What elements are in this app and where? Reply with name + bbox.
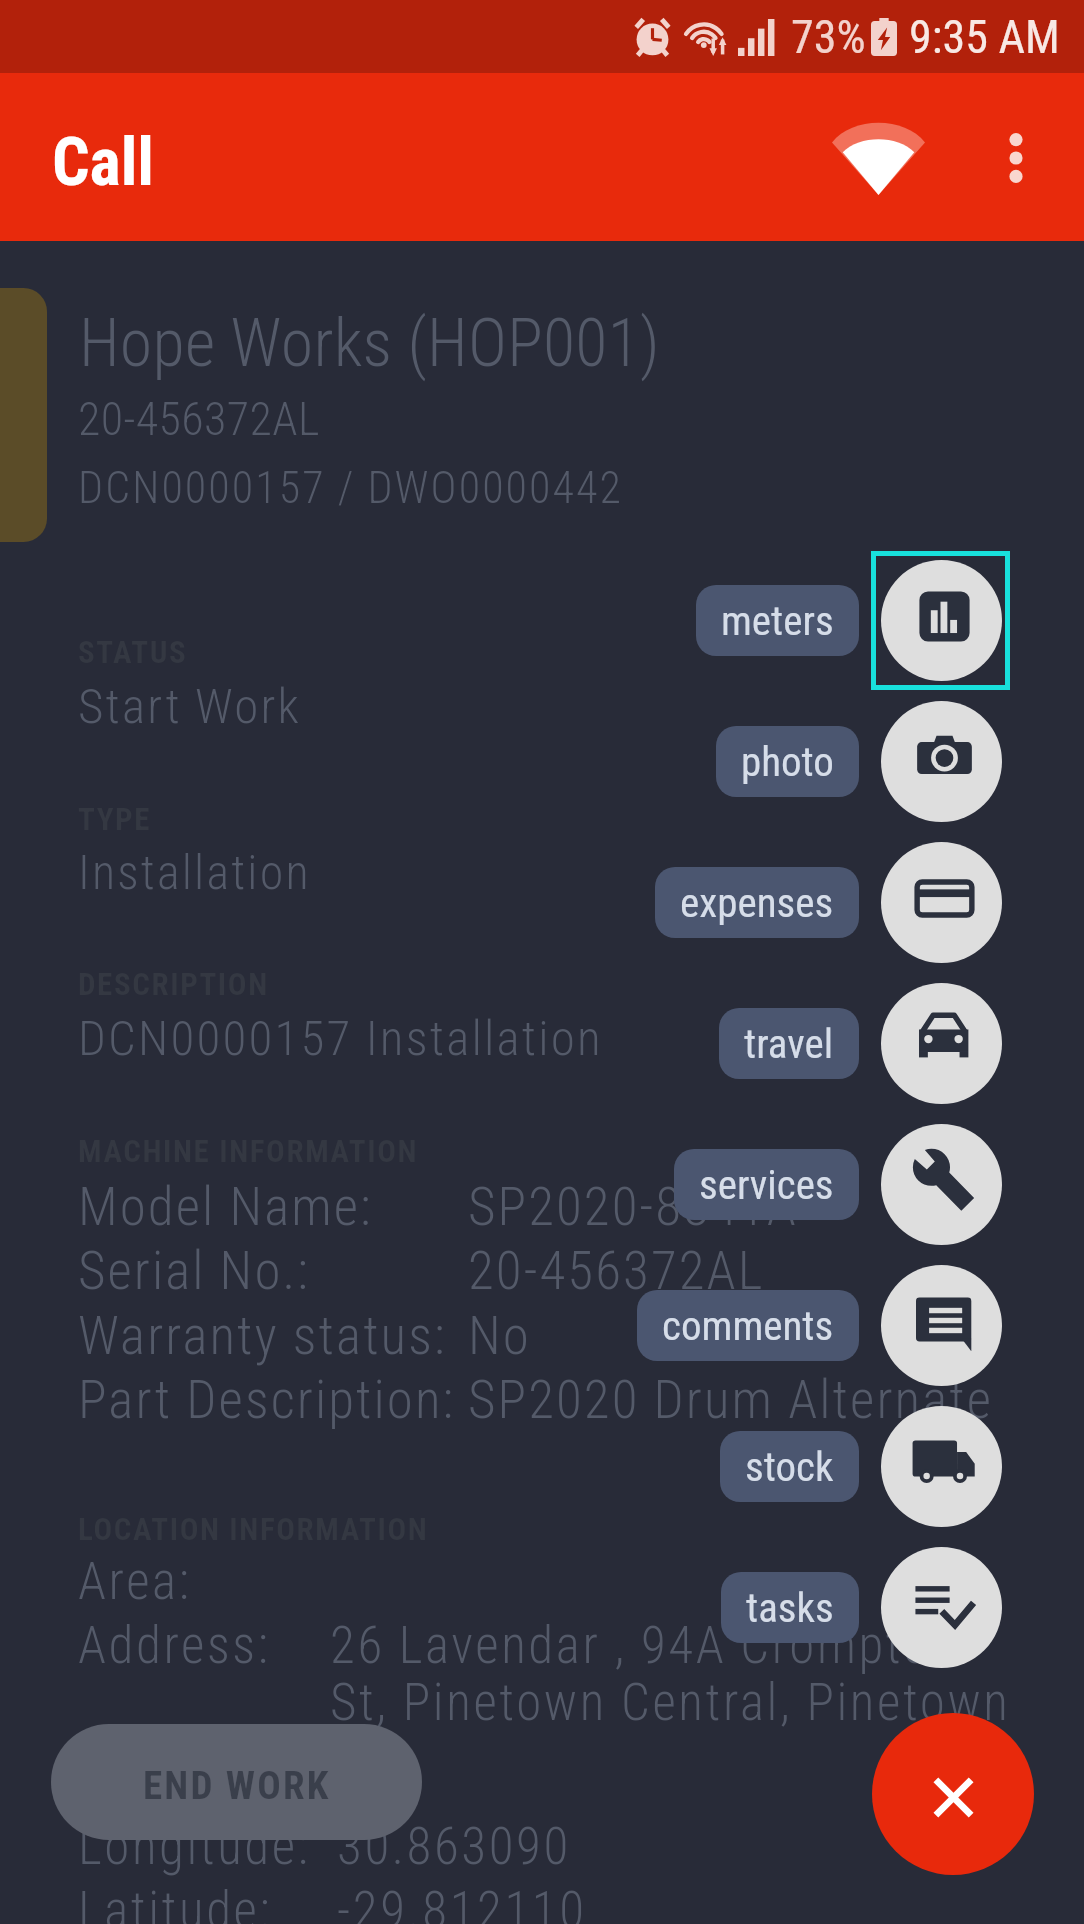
staticText: Installation <box>78 844 311 900</box>
staticText: DCN0000157 / DWO0000442 <box>78 462 623 514</box>
staticText: travel <box>744 1020 834 1068</box>
staticText: TYPE <box>78 801 152 837</box>
button[interactable]: expenses <box>655 867 859 938</box>
staticText: LOCATION INFORMATION <box>78 1511 429 1547</box>
button[interactable]: comments <box>637 1290 859 1361</box>
staticText: 73% <box>791 10 866 64</box>
staticText: 30.863090 <box>337 1817 571 1877</box>
button[interactable]: More options <box>980 122 1052 194</box>
staticText: DCN0000157 Installation <box>78 1010 603 1067</box>
staticText: SP2020-8841A <box>468 1176 798 1238</box>
button[interactable]: travel <box>881 983 1002 1104</box>
staticText: No <box>468 1305 531 1367</box>
button[interactable]: stock <box>881 1406 1002 1527</box>
button[interactable]: tasks <box>881 1547 1002 1668</box>
staticText: END WORK <box>143 1763 331 1809</box>
staticText: 9:35 AM <box>909 10 1060 64</box>
button[interactable]: services <box>674 1149 859 1220</box>
staticText: Call <box>52 124 154 201</box>
button[interactable]: stock <box>720 1431 859 1502</box>
button[interactable]: meters <box>881 560 1002 681</box>
button[interactable]: tasks <box>721 1572 859 1643</box>
button[interactable]: comments <box>881 1265 1002 1386</box>
staticText: 20-456372AL <box>468 1240 765 1302</box>
button[interactable]: photo <box>881 701 1002 822</box>
staticText: Warranty status: <box>78 1305 447 1367</box>
button[interactable]: meters <box>696 585 859 656</box>
staticText: meters <box>721 597 834 645</box>
staticText: comments <box>662 1302 834 1350</box>
staticText: DESCRIPTION <box>78 966 269 1002</box>
staticText: Serial No.: <box>78 1240 311 1302</box>
staticText: Hope Works (HOP001) <box>79 305 660 382</box>
staticText: -29.812110 <box>337 1881 587 1924</box>
button[interactable]: travel <box>719 1008 859 1079</box>
staticText: SP2020 Drum Alternate <box>468 1369 994 1431</box>
staticText: photo <box>741 738 834 786</box>
staticText: MACHINE INFORMATION <box>78 1133 419 1169</box>
staticText: Area: <box>78 1552 192 1612</box>
staticText: stock <box>745 1443 834 1491</box>
button[interactable]: expenses <box>881 842 1002 963</box>
button[interactable]: services <box>881 1124 1002 1245</box>
staticText: tasks <box>746 1584 834 1632</box>
button[interactable]: Close menu <box>872 1713 1034 1875</box>
staticText: services <box>699 1161 834 1209</box>
staticText: 20-456372AL <box>78 392 320 446</box>
staticText: STATUS <box>78 634 188 670</box>
staticText: Start Work <box>78 678 302 735</box>
staticText: St, Pinetown Central, Pinetown <box>330 1673 1011 1733</box>
staticText: Longitude: <box>78 1817 311 1877</box>
button[interactable]: photo <box>716 726 859 797</box>
staticText: expenses <box>680 879 834 927</box>
staticText: Latitude: <box>78 1881 273 1924</box>
button[interactable]: Wifi <box>820 106 937 209</box>
staticText: 26 Lavendar , 94A Crompton <box>330 1616 958 1676</box>
staticText: Part Description: <box>78 1369 456 1431</box>
staticText: Address: <box>78 1616 271 1676</box>
staticText: Model Name: <box>78 1176 373 1238</box>
button[interactable]: END WORK <box>51 1724 422 1840</box>
